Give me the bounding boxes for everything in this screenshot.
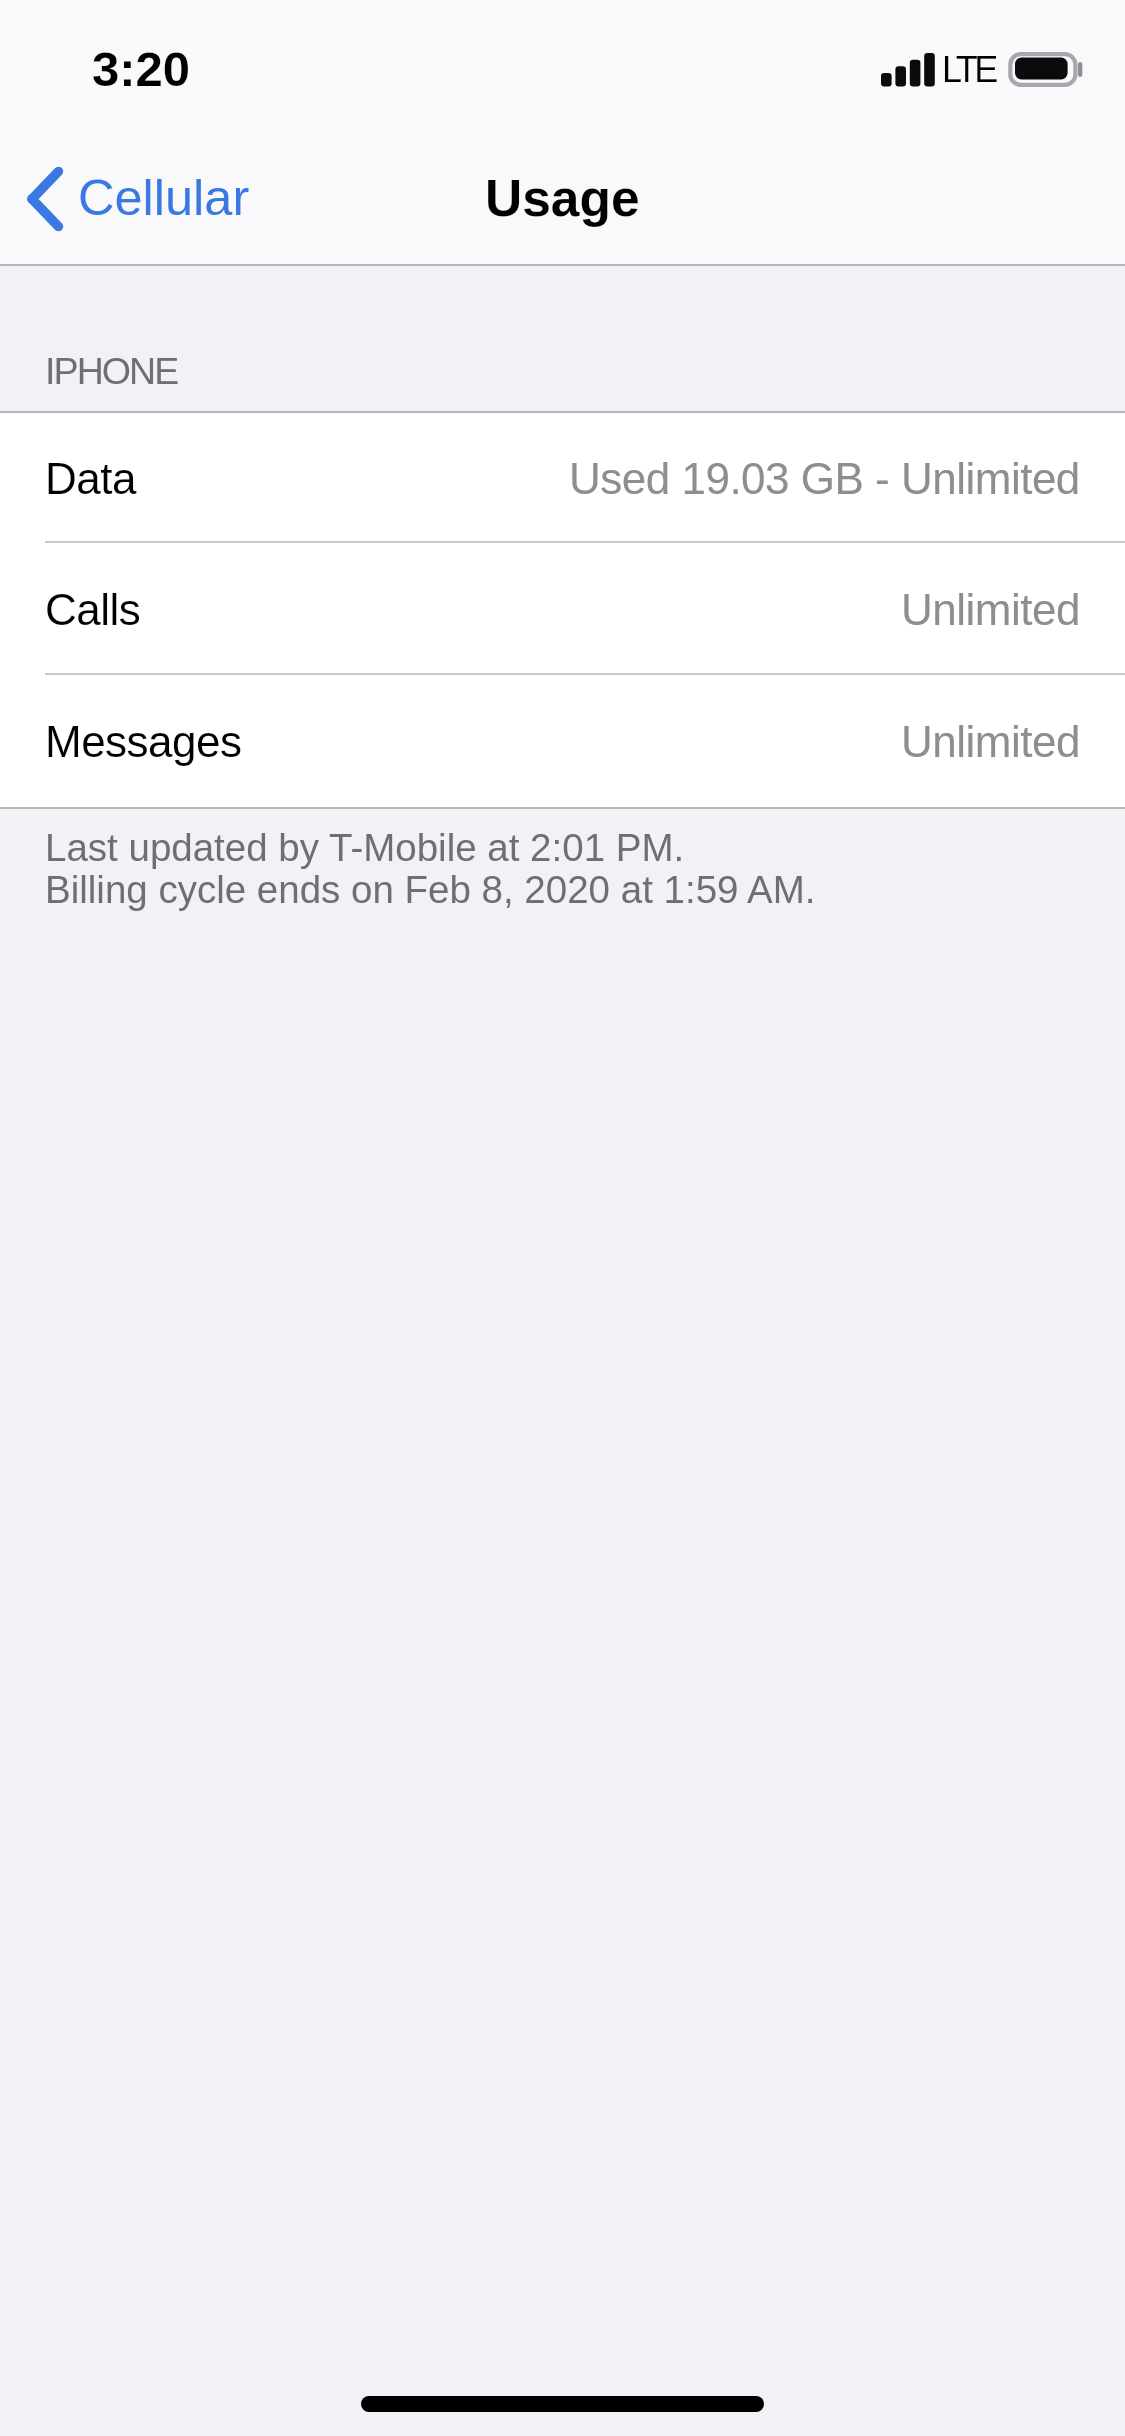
staticText: Usage (485, 169, 640, 227)
staticText: Unlimited (901, 585, 1080, 634)
button[interactable]: Back to Cellular (0, 132, 275, 264)
button[interactable]: Data (0, 413, 1125, 543)
staticText: IPHONE (45, 350, 178, 392)
staticText: Calls (45, 585, 141, 634)
staticText: Unlimited (901, 717, 1080, 766)
staticText: Data (45, 454, 136, 503)
staticText: Last updated by T-Mobile at 2:01 PM. (45, 826, 685, 869)
staticText: Cellular (78, 169, 250, 225)
button[interactable]: Calls (0, 543, 1125, 675)
staticText: 3:20 (92, 42, 191, 97)
button[interactable]: Messages (0, 675, 1125, 807)
staticText: LTE (942, 49, 995, 89)
staticText: Used 19.03 GB - Unlimited (569, 454, 1080, 503)
staticText: Billing cycle ends on Feb 8, 2020 at 1:5… (45, 868, 816, 911)
staticText: Messages (45, 717, 242, 766)
